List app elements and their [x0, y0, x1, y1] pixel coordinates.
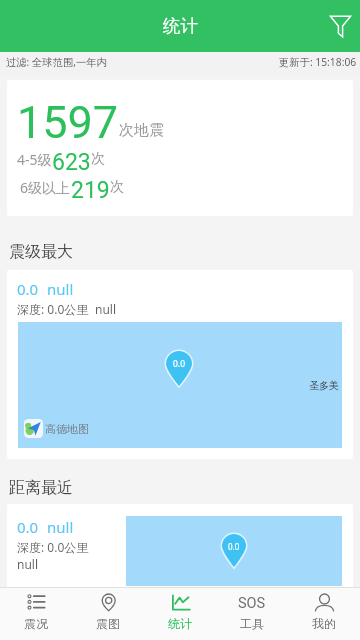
button[interactable]: 1597 [7, 80, 353, 216]
staticText: 过滤: 全球范围,一年内 [6, 55, 107, 69]
staticText: 深度: 0.0公里 [17, 301, 89, 317]
staticText: 次地震 [119, 121, 164, 140]
staticText: 震况 [24, 616, 48, 631]
staticText: 0.0 [173, 358, 186, 370]
staticText: null [17, 556, 39, 572]
button[interactable]: 我的 [288, 588, 360, 640]
staticText: 圣多美 [309, 379, 339, 392]
staticText: 0.0 [17, 517, 39, 537]
button[interactable]: Filter [320, 0, 360, 52]
staticText: 统计 [163, 15, 198, 37]
staticText: 6级以上 [20, 178, 71, 197]
staticText: 0.0 [17, 279, 39, 299]
button[interactable]: 0.0 [7, 504, 353, 587]
staticText: SOS [238, 595, 266, 612]
staticText: 深度: 0.0公里 [17, 539, 89, 555]
staticText: 219 [71, 177, 110, 204]
staticText: 更新于: 15:18:06 [279, 55, 357, 69]
staticText: 次 [91, 150, 105, 168]
staticText: 我的 [312, 616, 336, 631]
staticText: null [95, 301, 117, 317]
staticText: 4-5级 [17, 150, 52, 169]
staticText: 623 [52, 149, 91, 176]
staticText: 次 [110, 178, 124, 196]
button[interactable]: 震况 [0, 588, 72, 640]
staticText: 工具 [240, 616, 264, 631]
staticText: null [47, 279, 74, 299]
button[interactable]: 统计 [144, 588, 216, 640]
button[interactable]: SOS [216, 588, 288, 640]
staticText: 0.0 [228, 541, 240, 552]
staticText: 1597 [17, 96, 119, 149]
staticText: 高德地图 [45, 422, 89, 436]
staticText: 距离最近 [9, 478, 73, 498]
button[interactable]: 震图 [72, 588, 144, 640]
button[interactable]: 0.0 [7, 270, 353, 459]
staticText: 震级最大 [9, 242, 73, 262]
staticText: 统计 [168, 616, 192, 631]
staticText: 震图 [96, 616, 120, 631]
staticText: null [47, 517, 74, 537]
